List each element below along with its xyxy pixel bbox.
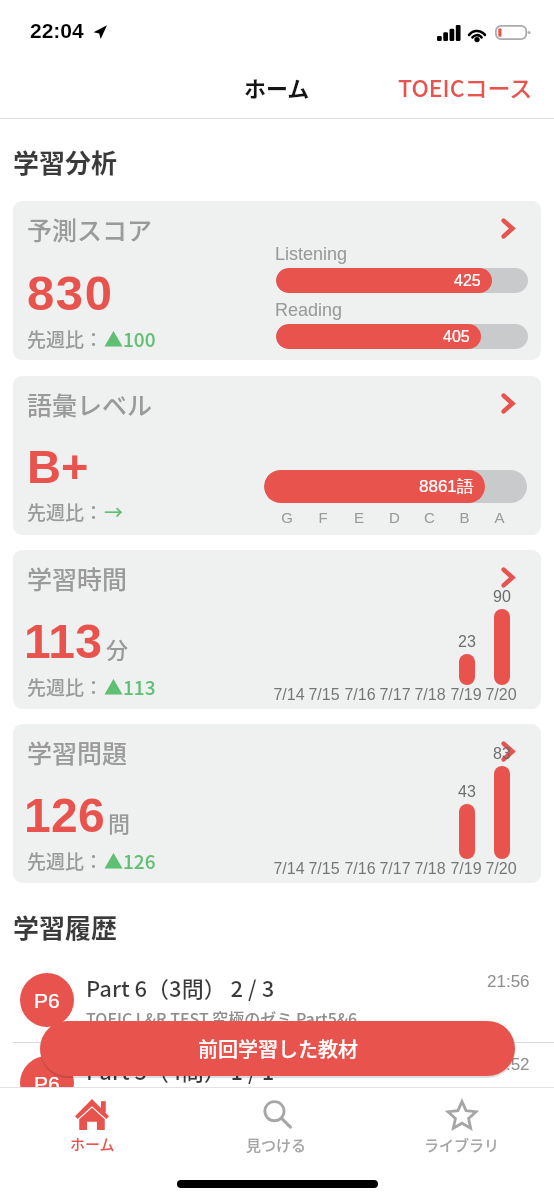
staticText: 7/17 (375, 686, 415, 704)
staticText: ホーム (70, 1133, 115, 1155)
other: 見つける (261, 1099, 293, 1131)
staticText: 先週比： (27, 847, 104, 875)
staticText: 126 (24, 789, 105, 843)
staticText: 22:04 (30, 19, 84, 42)
button[interactable]: 語彙レベル (13, 376, 541, 535)
button[interactable]: TOEICコース (386, 64, 545, 109)
staticText: TOEIC L&R TEST 究極のゼミ Part5&6 (86, 1006, 358, 1029)
staticText: 405 (443, 328, 470, 346)
staticText: TOEIC L&R TEST 究極のゼミ Part5&6 (86, 1089, 358, 1112)
staticText: B+ (27, 440, 89, 493)
staticText: 113 (24, 615, 103, 669)
staticText: 先週比： (27, 498, 104, 526)
staticText: G (269, 509, 305, 526)
staticText: 7/19 (446, 686, 486, 704)
button[interactable]: P6 (0, 1046, 554, 1120)
staticText: 先週比： (27, 673, 104, 701)
staticText: ▲113 (104, 673, 156, 701)
button[interactable]: ホーム (0, 1088, 184, 1166)
staticText: ▲100 (104, 325, 156, 353)
staticText: 7/19 (446, 860, 486, 878)
staticText: 語彙レベル (27, 386, 153, 422)
staticText: 7/20 (481, 860, 521, 878)
staticText: 学習問題 (27, 734, 128, 770)
staticText: 問 (108, 806, 131, 838)
staticText: 学習時間 (27, 560, 128, 596)
staticText: P6 (34, 1072, 60, 1095)
staticText: 8861語 (419, 476, 474, 497)
staticText: 830 (27, 266, 114, 321)
staticText: E (341, 509, 377, 526)
button[interactable]: P6 (0, 963, 554, 1037)
staticText: 学習履歴 (13, 908, 118, 946)
staticText: F (305, 509, 341, 526)
staticText: A (482, 509, 517, 526)
button[interactable]: 見つける (184, 1088, 369, 1166)
staticText: → (104, 498, 124, 526)
staticText: Listening (275, 244, 348, 264)
staticText: 425 (454, 272, 481, 290)
button[interactable]: ホーム (232, 65, 322, 109)
staticText: 23 (452, 633, 482, 651)
button[interactable]: 学習時間 (13, 550, 541, 709)
staticText: 7/16 (340, 686, 380, 704)
staticText: 7/14 (269, 686, 309, 704)
staticText: 分 (106, 632, 129, 664)
staticText: 7/17 (375, 860, 415, 878)
staticText: 21:56 (487, 972, 530, 991)
other: ホーム (75, 1099, 109, 1130)
staticText: 7/18 (410, 686, 450, 704)
staticText: 21:52 (487, 1055, 530, 1074)
staticText: ▲126 (104, 847, 156, 875)
button[interactable]: 予測スコア (13, 201, 541, 360)
staticText: Part 6（3問） 2 / 3 (86, 971, 275, 1003)
staticText: 見つける (246, 1134, 307, 1156)
button[interactable]: ライブラリ (369, 1088, 554, 1166)
staticText: ライブラリ (424, 1134, 500, 1156)
staticText: Reading (275, 300, 343, 320)
staticText: D (377, 509, 412, 526)
staticText: 学習分析 (13, 143, 118, 181)
staticText: C (412, 509, 447, 526)
staticText: 予測スコア (27, 211, 153, 247)
button[interactable]: 前回学習した教材 (40, 1021, 515, 1076)
staticText: 90 (487, 588, 517, 606)
staticText: 7/14 (269, 860, 309, 878)
staticText: Part 5（4問） 1 / 1 (86, 1054, 275, 1086)
staticText: B (447, 509, 482, 526)
staticText: 7/18 (410, 860, 450, 878)
button[interactable]: 学習問題 (13, 724, 541, 883)
other: ライブラリ (446, 1099, 478, 1131)
staticText: TOEICコース (398, 70, 533, 103)
staticText: 7/15 (304, 860, 344, 878)
staticText: 7/15 (304, 686, 344, 704)
staticText: 先週比： (27, 325, 104, 353)
staticText: 83 (487, 745, 517, 763)
staticText: ホーム (244, 71, 310, 103)
staticText: 43 (452, 783, 482, 801)
staticText: 7/20 (481, 686, 521, 704)
staticText: P6 (34, 989, 60, 1012)
staticText: 7/16 (340, 860, 380, 878)
staticText: 前回学習した教材 (198, 1034, 358, 1063)
